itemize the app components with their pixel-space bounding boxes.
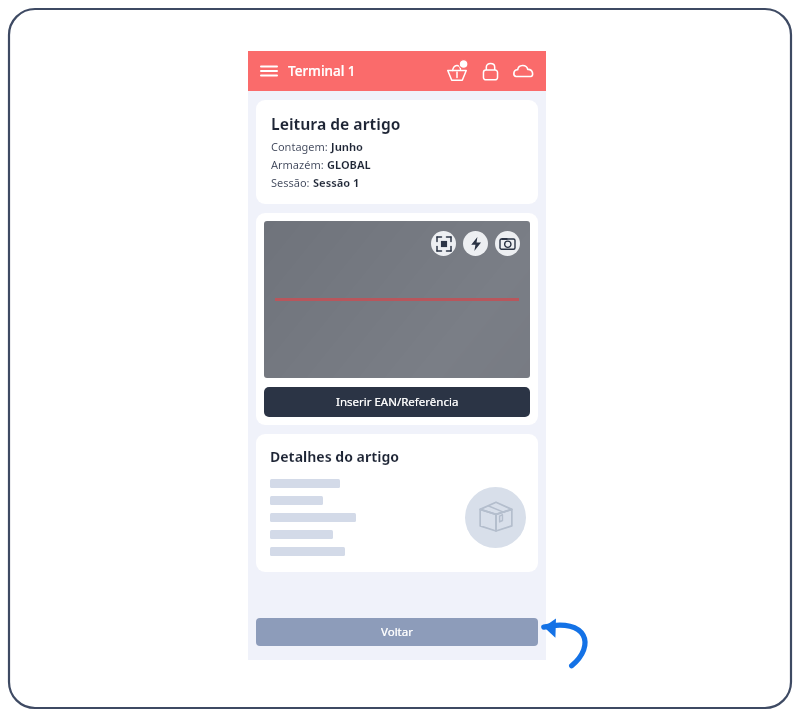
staticText: Leitura de artigo bbox=[271, 113, 401, 134]
button[interactable]: Inserir EAN/Referência bbox=[264, 387, 530, 417]
button[interactable]: Voltar bbox=[256, 618, 538, 646]
staticText: Junho bbox=[331, 139, 363, 154]
staticText: Contagem: bbox=[271, 139, 331, 154]
button[interactable]: Menu bbox=[258, 60, 280, 82]
button[interactable]: Toggle flash bbox=[463, 231, 488, 256]
staticText: Voltar bbox=[381, 624, 413, 640]
staticText: Sessão 1 bbox=[313, 175, 360, 190]
button[interactable]: Cart bbox=[444, 58, 470, 84]
staticText: Detalhes do artigo bbox=[270, 447, 400, 466]
button[interactable]: Lock bbox=[477, 58, 503, 84]
staticText: Inserir EAN/Referência bbox=[336, 394, 459, 410]
staticText: Terminal 1 bbox=[288, 62, 356, 80]
button[interactable]: Take photo bbox=[495, 231, 520, 256]
button[interactable]: Cloud sync bbox=[510, 58, 536, 84]
staticText: Armazém: bbox=[271, 157, 327, 172]
staticText: Sessão: bbox=[271, 175, 313, 190]
button[interactable]: Scan barcode bbox=[431, 231, 456, 256]
staticText: GLOBAL bbox=[327, 157, 371, 172]
